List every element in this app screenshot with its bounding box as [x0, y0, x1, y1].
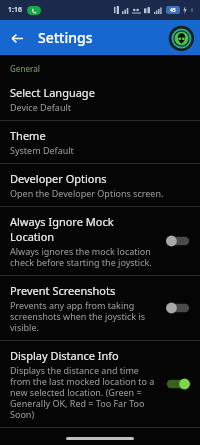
staticText: Developer Options	[10, 171, 107, 186]
button[interactable]: Toggle off	[164, 300, 192, 316]
staticText: Prevents any app from taking screenshots…	[10, 299, 156, 333]
button[interactable]: App logo	[168, 25, 194, 51]
staticText: 1:16	[8, 5, 22, 15]
button[interactable]: Developer Options	[0, 164, 200, 206]
staticText: Settings	[38, 28, 93, 47]
button[interactable]: Toggle on	[164, 376, 192, 392]
button[interactable]: Always Ignore Mock Location	[0, 207, 200, 275]
staticText: Always Ignore Mock Location	[10, 214, 156, 244]
staticText: Always ignores the mock location check b…	[10, 245, 156, 268]
staticText: 45	[170, 7, 176, 14]
button[interactable]: Select Language	[0, 78, 200, 120]
staticText: General	[10, 63, 40, 74]
button[interactable]: Display Distance Info	[0, 341, 200, 427]
staticText: Open the Developer Options screen.	[10, 187, 164, 199]
staticText: Device Default	[10, 101, 72, 113]
staticText: Prevent Screenshots	[10, 283, 116, 298]
staticText: System Default	[10, 144, 74, 156]
staticText: Select Language	[10, 85, 95, 100]
button[interactable]: Back	[5, 26, 29, 50]
button[interactable]: Toggle off	[164, 233, 192, 249]
button[interactable]: Prevent Screenshots	[0, 276, 200, 340]
button[interactable]: Theme	[0, 121, 200, 163]
staticText: Theme	[10, 128, 46, 143]
staticText: Display Distance Info	[10, 348, 119, 363]
staticText: Displays the distance and time from the …	[10, 364, 156, 420]
